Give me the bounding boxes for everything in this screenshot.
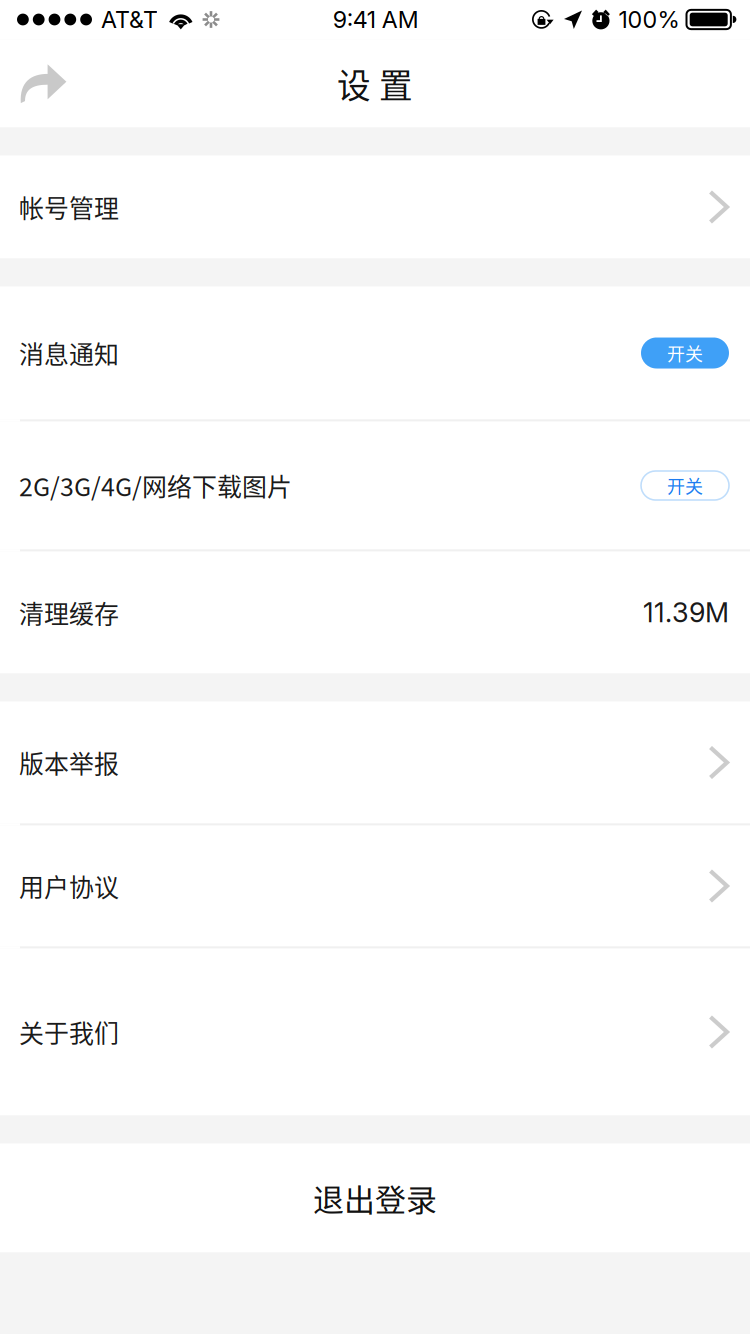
staticText: 用户协议 [19,868,119,904]
staticText: 设 置 [337,59,413,108]
button[interactable]: 清理缓存 [0,551,750,673]
staticText: 100% [618,5,679,34]
staticText: 版本举报 [19,744,119,780]
button[interactable]: 帐号管理 [0,155,750,258]
staticText: 退出登录 [313,1176,437,1220]
staticText: 开关 [667,472,703,499]
staticText: 帐号管理 [19,189,119,225]
button[interactable]: Share [0,51,81,115]
staticText: 消息通知 [19,335,119,371]
staticText: 9:41 AM [333,5,419,34]
staticText: 2G/3G/4G/网络下载图片 [19,467,292,503]
staticText: 开关 [667,340,703,366]
staticText: 11.39M [643,596,729,629]
staticText: 清理缓存 [19,594,119,630]
staticText: 关于我们 [19,1014,119,1050]
button[interactable]: 退出登录 [0,1143,750,1252]
button[interactable]: 用户协议 [0,825,750,946]
button[interactable]: 关于我们 [0,948,750,1115]
button[interactable]: 消息通知 [0,286,750,419]
button[interactable]: 版本举报 [0,701,750,823]
staticText: AT&T [101,5,158,34]
button[interactable]: 2G/3G/4G/网络下载图片 [0,421,750,549]
